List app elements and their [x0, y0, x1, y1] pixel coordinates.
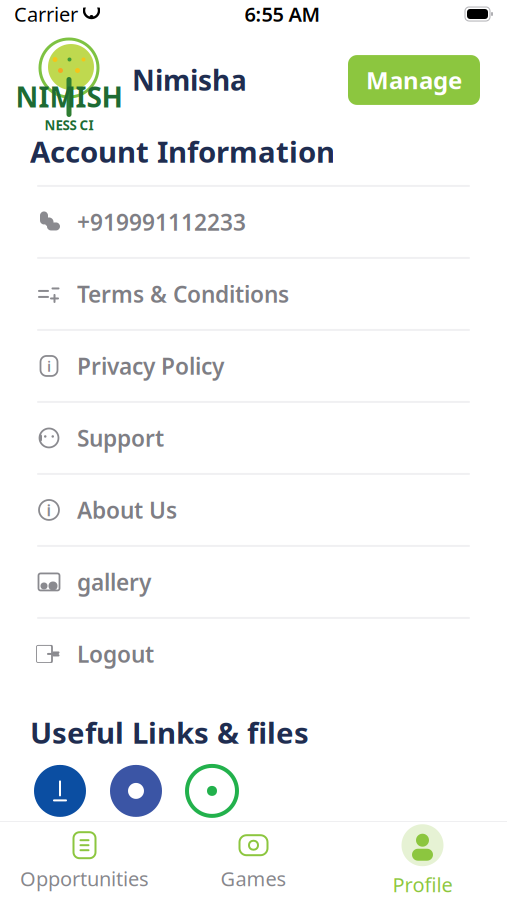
- staticText: Nimisha: [132, 61, 247, 99]
- staticText: +919991112233: [77, 207, 246, 237]
- button[interactable]: Useful link 3: [185, 764, 239, 818]
- button[interactable]: Support: [37, 401, 470, 473]
- staticText: Account Information: [30, 132, 335, 171]
- staticText: Support: [77, 423, 164, 453]
- button[interactable]: gallery: [37, 545, 470, 617]
- staticText: 6:55 AM: [244, 1, 320, 27]
- staticText: i: [46, 499, 51, 520]
- button[interactable]: Logout: [37, 617, 470, 689]
- button[interactable]: Terms & Conditions: [37, 257, 470, 329]
- button[interactable]: Profile: [338, 822, 507, 900]
- staticText: About Us: [77, 495, 177, 525]
- staticText: NIMISH: [15, 78, 122, 115]
- staticText: Logout: [77, 639, 154, 669]
- button[interactable]: Useful link 1: [33, 764, 87, 818]
- button[interactable]: Useful link 2: [109, 764, 163, 818]
- button[interactable]: Opportunities: [0, 822, 169, 900]
- staticText: gallery: [77, 567, 151, 597]
- staticText: NESS CI: [44, 116, 93, 134]
- staticText: i: [47, 356, 51, 376]
- staticText: Carrier: [14, 1, 78, 27]
- staticText: Manage: [366, 64, 462, 96]
- button[interactable]: i: [37, 473, 470, 545]
- staticText: Privacy Policy: [77, 351, 224, 381]
- staticText: Profile: [392, 871, 452, 898]
- button[interactable]: +919991112233: [37, 185, 470, 257]
- staticText: Terms & Conditions: [77, 279, 289, 309]
- staticText: Useful Links & files: [30, 713, 309, 752]
- staticText: Games: [220, 865, 286, 892]
- button[interactable]: i: [37, 329, 470, 401]
- button[interactable]: Games: [169, 822, 338, 900]
- staticText: Opportunities: [20, 865, 149, 892]
- button[interactable]: Manage: [348, 55, 480, 105]
